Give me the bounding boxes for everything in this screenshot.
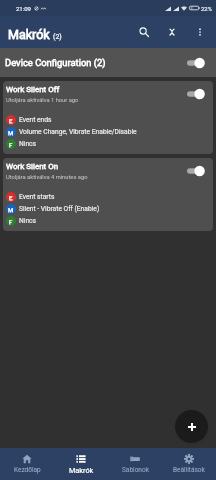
staticText: (2) bbox=[53, 33, 62, 41]
staticText: Beállítások bbox=[173, 466, 205, 474]
staticText: E bbox=[9, 117, 13, 124]
button[interactable]: Kezdőlap bbox=[0, 448, 54, 480]
staticText: F bbox=[9, 218, 13, 225]
staticText: Utoljára aktiválva 1 hour ago bbox=[6, 97, 79, 104]
staticText: Silent - Vibrate Off (Enable) bbox=[19, 205, 100, 213]
button[interactable]: Beállítások bbox=[162, 448, 216, 480]
staticText: Utoljára aktiválva 4 minutes ago bbox=[6, 174, 88, 181]
staticText: F bbox=[9, 141, 13, 148]
button[interactable]: Collapse all bbox=[158, 18, 186, 46]
staticText: M bbox=[8, 206, 14, 213]
button[interactable]: Work Silent On bbox=[3, 158, 213, 231]
staticText: Event ends bbox=[19, 116, 52, 124]
button[interactable]: Search bbox=[130, 18, 158, 46]
staticText: 22% bbox=[201, 5, 213, 12]
staticText: M bbox=[8, 129, 14, 136]
button[interactable]: Toggle bbox=[187, 165, 205, 177]
staticText: Volume Change, Vibrate Enable/Disable bbox=[19, 128, 137, 136]
staticText: Nincs bbox=[19, 140, 37, 148]
button[interactable]: Device Configuration (2) bbox=[0, 48, 216, 77]
staticText: Makrók bbox=[69, 466, 94, 475]
staticText: Nincs bbox=[19, 217, 37, 225]
staticText: Work Silent On bbox=[6, 162, 59, 171]
button[interactable]: Toggle bbox=[187, 57, 205, 69]
button[interactable]: Sablonok bbox=[108, 448, 162, 480]
staticText: E bbox=[9, 194, 13, 201]
button[interactable]: Toggle bbox=[187, 88, 205, 100]
button[interactable]: Makrók bbox=[54, 448, 108, 480]
staticText: Work Silent Off bbox=[6, 85, 60, 94]
staticText: Kezdőlap bbox=[14, 466, 41, 474]
staticText: Sablonok bbox=[122, 466, 149, 474]
button[interactable]: Work Silent Off bbox=[3, 81, 213, 154]
staticText: Event starts bbox=[19, 193, 55, 201]
button[interactable]: More options bbox=[186, 18, 214, 46]
button[interactable]: Add macro bbox=[175, 410, 208, 443]
staticText: 21:09 bbox=[16, 5, 31, 12]
staticText: Device Configuration (2) bbox=[5, 57, 106, 68]
staticText: Makrók bbox=[8, 27, 50, 42]
